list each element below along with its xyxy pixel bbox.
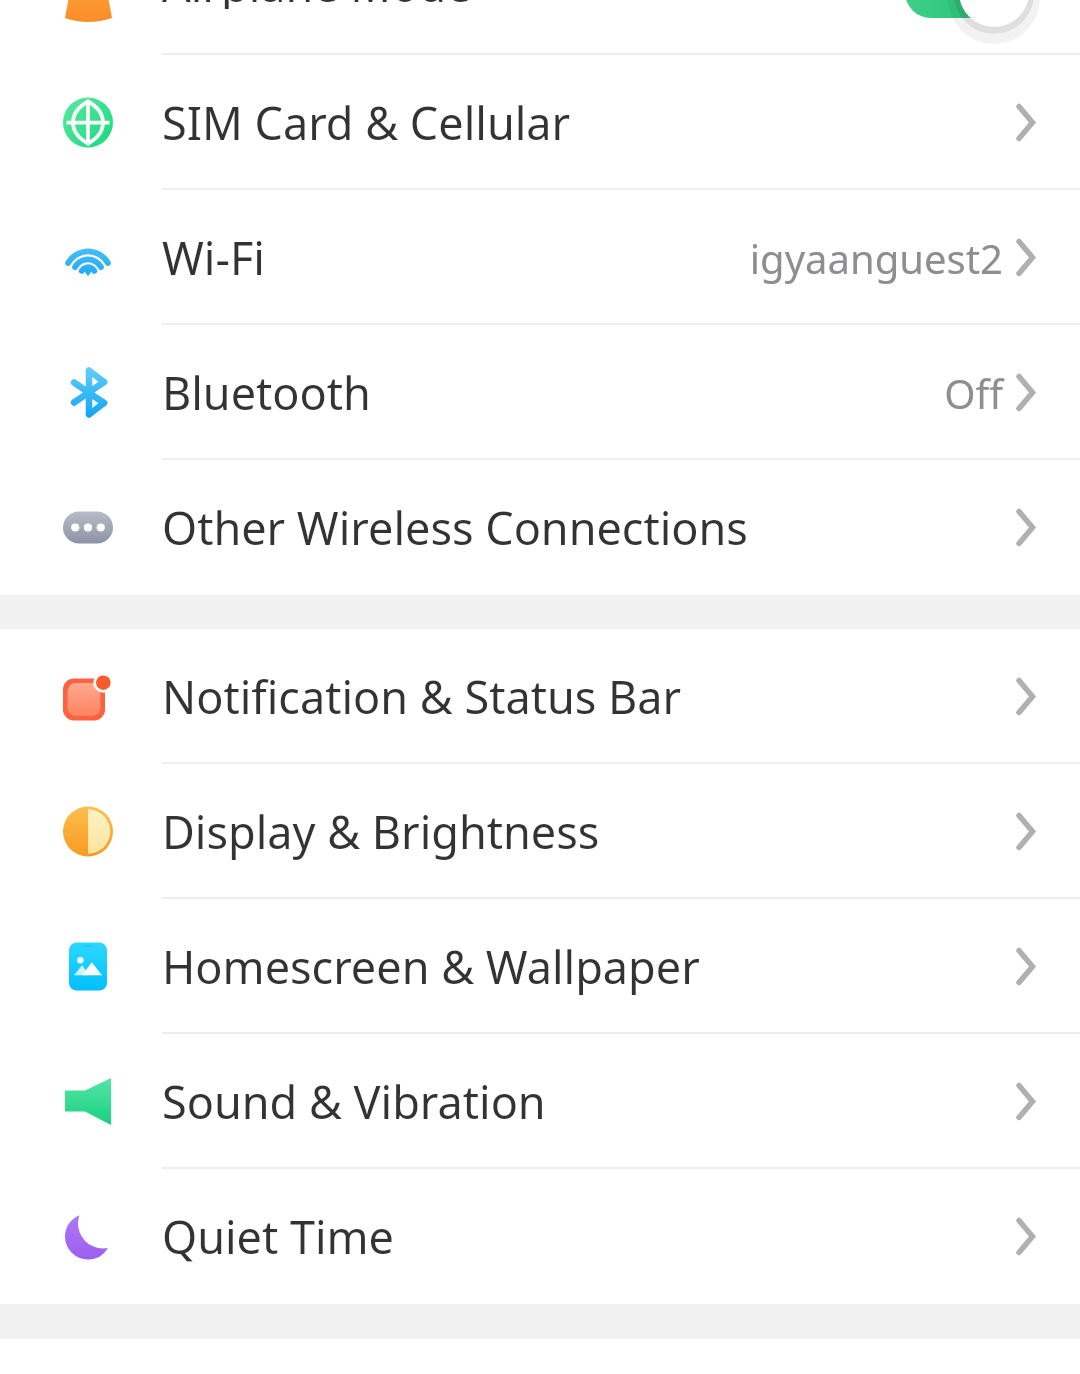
button[interactable]: SIM Card & Cellular: [0, 55, 1080, 190]
staticText: Wi-Fi: [162, 227, 265, 288]
staticText: Other Wireless Connections: [162, 497, 748, 558]
staticText: igyaanguest2: [749, 231, 1003, 285]
staticText: Quiet Time: [162, 1206, 394, 1267]
staticText: Notification & Status Bar: [162, 666, 682, 727]
staticText: SIM Card & Cellular: [162, 92, 571, 153]
button[interactable]: Airplane Mode: [0, 0, 1080, 55]
button[interactable]: Other Wireless Connections: [0, 460, 1080, 595]
button[interactable]: Bluetooth: [0, 325, 1080, 460]
button[interactable]: Sound & Vibration: [0, 1034, 1080, 1169]
staticText: Homescreen & Wallpaper: [162, 936, 700, 997]
staticText: Sound & Vibration: [162, 1071, 546, 1132]
button[interactable]: Quiet Time: [0, 1169, 1080, 1304]
staticText: Off: [944, 366, 1003, 420]
button[interactable]: Homescreen & Wallpaper: [0, 899, 1080, 1034]
staticText: Airplane Mode: [162, 0, 472, 9]
button[interactable]: Notification & Status Bar: [0, 629, 1080, 764]
staticText: Bluetooth: [162, 362, 371, 423]
button[interactable]: Wi-Fi: [0, 190, 1080, 325]
button[interactable]: Display & Brightness: [0, 764, 1080, 899]
staticText: Display & Brightness: [162, 801, 600, 862]
